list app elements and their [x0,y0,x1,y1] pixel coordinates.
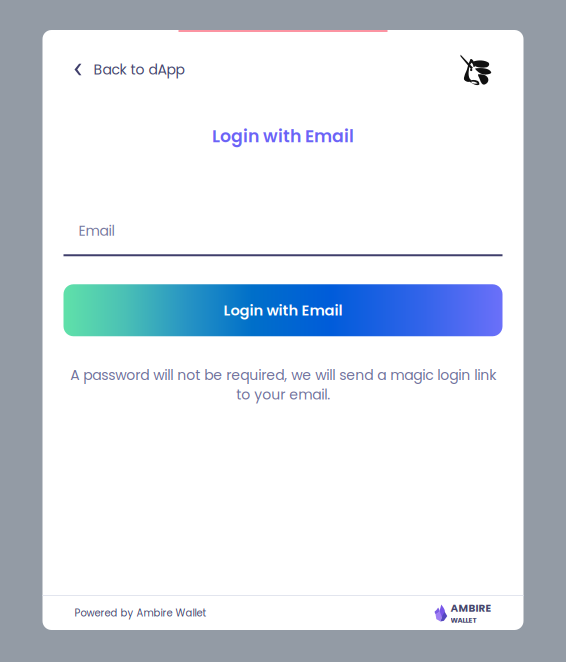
staticText: Email [78,221,114,241]
staticText: Login with Email [223,300,342,320]
staticText: WALLET [450,615,476,625]
staticText: Powered by Ambire Wallet [74,606,206,620]
staticText: AMBIRE [450,601,491,615]
button[interactable]: Login with Email [63,284,502,336]
button[interactable]: Back to dApp [74,57,184,81]
staticText: A password will not be required, we will… [70,365,496,404]
staticText: Back to dApp [93,60,184,79]
staticText: Login with Email [212,124,354,148]
